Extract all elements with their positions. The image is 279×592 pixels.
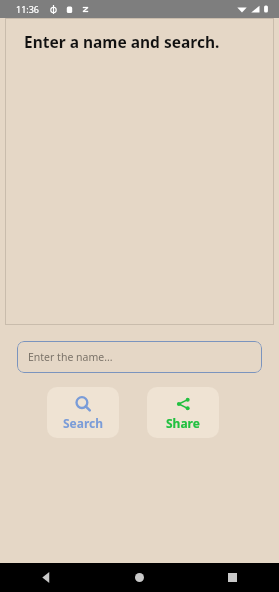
staticText: 11:36 — [16, 3, 40, 15]
staticText: Search — [63, 415, 104, 431]
button[interactable]: Back — [0, 563, 93, 592]
button[interactable]: Search — [47, 387, 119, 438]
staticText: Enter the name... — [28, 350, 113, 364]
button[interactable]: Share — [147, 387, 219, 438]
staticText: Share — [166, 415, 200, 431]
button[interactable]: Recents — [186, 563, 279, 592]
button[interactable]: Enter the name... — [17, 341, 262, 373]
staticText: Enter a name and search. — [24, 31, 220, 52]
button[interactable]: Home — [93, 563, 186, 592]
